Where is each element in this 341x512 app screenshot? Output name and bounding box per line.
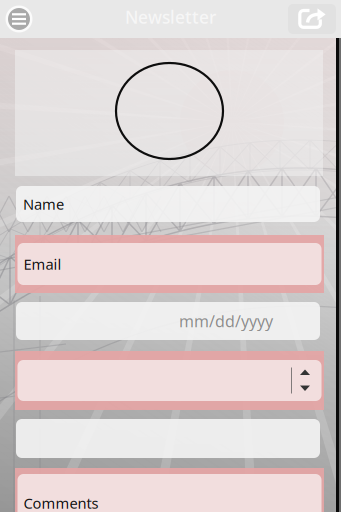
button[interactable]: Menu	[0, 0, 38, 38]
button[interactable]	[16, 419, 320, 458]
button[interactable]: Name	[16, 186, 320, 222]
button[interactable]	[15, 351, 324, 410]
staticText: Newsletter	[125, 5, 216, 28]
staticText: Name	[23, 194, 64, 214]
staticText: Email	[23, 254, 61, 274]
staticText: Comments	[23, 493, 98, 512]
staticText: mm/dd/yyyy	[179, 310, 273, 332]
button[interactable]: Share	[288, 4, 336, 34]
button[interactable]: Email	[15, 235, 324, 293]
button[interactable]: mm/dd/yyyy	[16, 302, 320, 340]
button[interactable]: Comments	[15, 468, 324, 512]
